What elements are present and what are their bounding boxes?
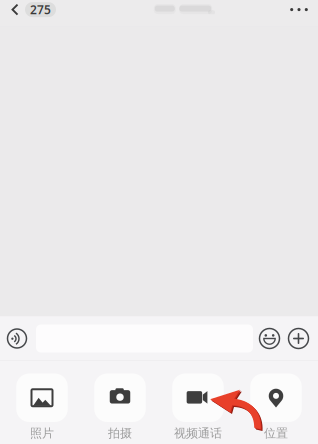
staticText: 拍摄 (108, 426, 132, 441)
button[interactable]: Voice input (1, 316, 33, 360)
staticText: 照片 (30, 426, 54, 441)
staticText: 视频通话 (174, 426, 222, 441)
button[interactable]: 视频通话 (159, 373, 237, 441)
button[interactable]: 拍摄 (81, 373, 159, 441)
staticText: 275 (30, 2, 51, 17)
button[interactable]: More (280, 0, 318, 23)
button[interactable]: More options (284, 316, 313, 360)
staticText: 位置 (264, 426, 288, 441)
button[interactable]: 275 (0, 2, 56, 17)
button[interactable]: Emoji (255, 316, 284, 360)
button[interactable]: 位置 (237, 373, 315, 441)
button[interactable]: 照片 (3, 373, 81, 441)
